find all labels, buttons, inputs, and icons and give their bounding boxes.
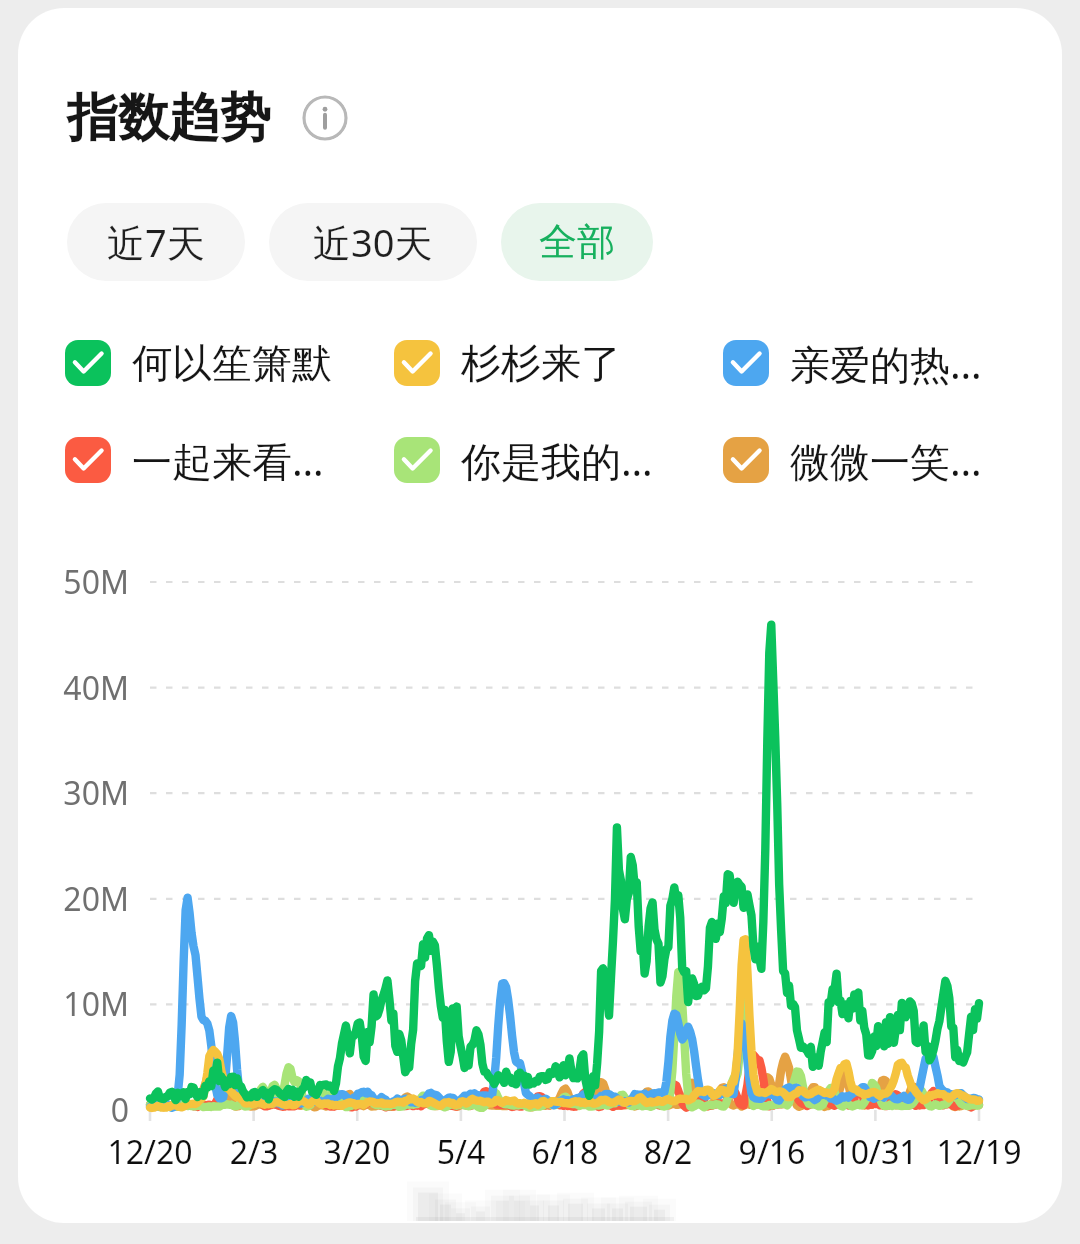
- staticText: 2/3: [164, 1130, 344, 1174]
- staticText: 5/4: [371, 1130, 551, 1174]
- staticText: 杉杉来了: [461, 338, 621, 388]
- staticText: 一起来看…: [132, 433, 324, 488]
- button[interactable]: 一起来看…: [65, 429, 370, 491]
- staticText: 20M: [18, 877, 129, 921]
- staticText: 何以笙箫默: [132, 338, 332, 388]
- button[interactable]: 杉杉来了: [394, 332, 699, 394]
- button[interactable]: 你是我的…: [394, 429, 699, 491]
- button[interactable]: Info: [302, 95, 348, 141]
- staticText: 6/18: [475, 1130, 655, 1174]
- button[interactable]: 全部: [501, 203, 653, 281]
- button[interactable]: 微微一笑…: [723, 429, 1028, 491]
- staticText: 12/19: [889, 1130, 1062, 1174]
- staticText: 你是我的…: [461, 433, 653, 488]
- staticText: 50M: [18, 560, 129, 604]
- staticText: 10M: [18, 982, 129, 1026]
- button[interactable]: 近7天: [67, 203, 245, 281]
- staticText: 8/2: [578, 1130, 758, 1174]
- staticText: 30M: [18, 771, 129, 815]
- staticText: 指数趋势: [67, 86, 271, 150]
- button[interactable]: 亲爱的热…: [723, 332, 1028, 394]
- staticText: 近30天: [313, 216, 433, 268]
- button[interactable]: 何以笙箫默: [65, 332, 370, 394]
- staticText: 3/20: [267, 1130, 447, 1174]
- staticText: 0: [18, 1088, 129, 1132]
- staticText: 10/31: [785, 1130, 965, 1174]
- staticText: 微微一笑…: [790, 433, 982, 488]
- button[interactable]: 近30天: [269, 203, 477, 281]
- staticText: 9/16: [682, 1130, 862, 1174]
- staticText: 近7天: [107, 216, 205, 268]
- staticText: 亲爱的热…: [790, 336, 982, 391]
- staticText: 12/20: [60, 1130, 240, 1174]
- staticText: 全部: [539, 218, 615, 266]
- staticText: 40M: [18, 666, 129, 710]
